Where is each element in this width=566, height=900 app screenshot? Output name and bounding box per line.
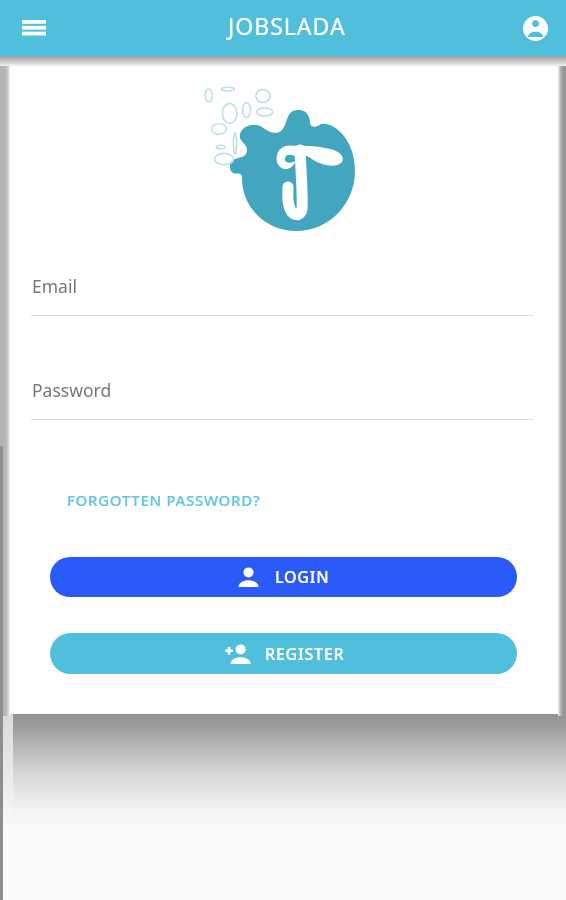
button[interactable]: Menu [12,6,56,50]
staticText: JOBSLADA [228,10,346,41]
button[interactable]: FORGOTTEN PASSWORD? [67,490,261,510]
staticText: FORGOTTEN PASSWORD? [67,490,261,510]
staticText: REGISTER [265,643,345,665]
staticText: Password [32,378,112,402]
button[interactable]: Account [513,6,557,50]
staticText: Email [32,274,77,298]
button[interactable]: REGISTER [50,633,517,674]
staticText: LOGIN [275,566,330,588]
button[interactable]: LOGIN [50,557,517,597]
